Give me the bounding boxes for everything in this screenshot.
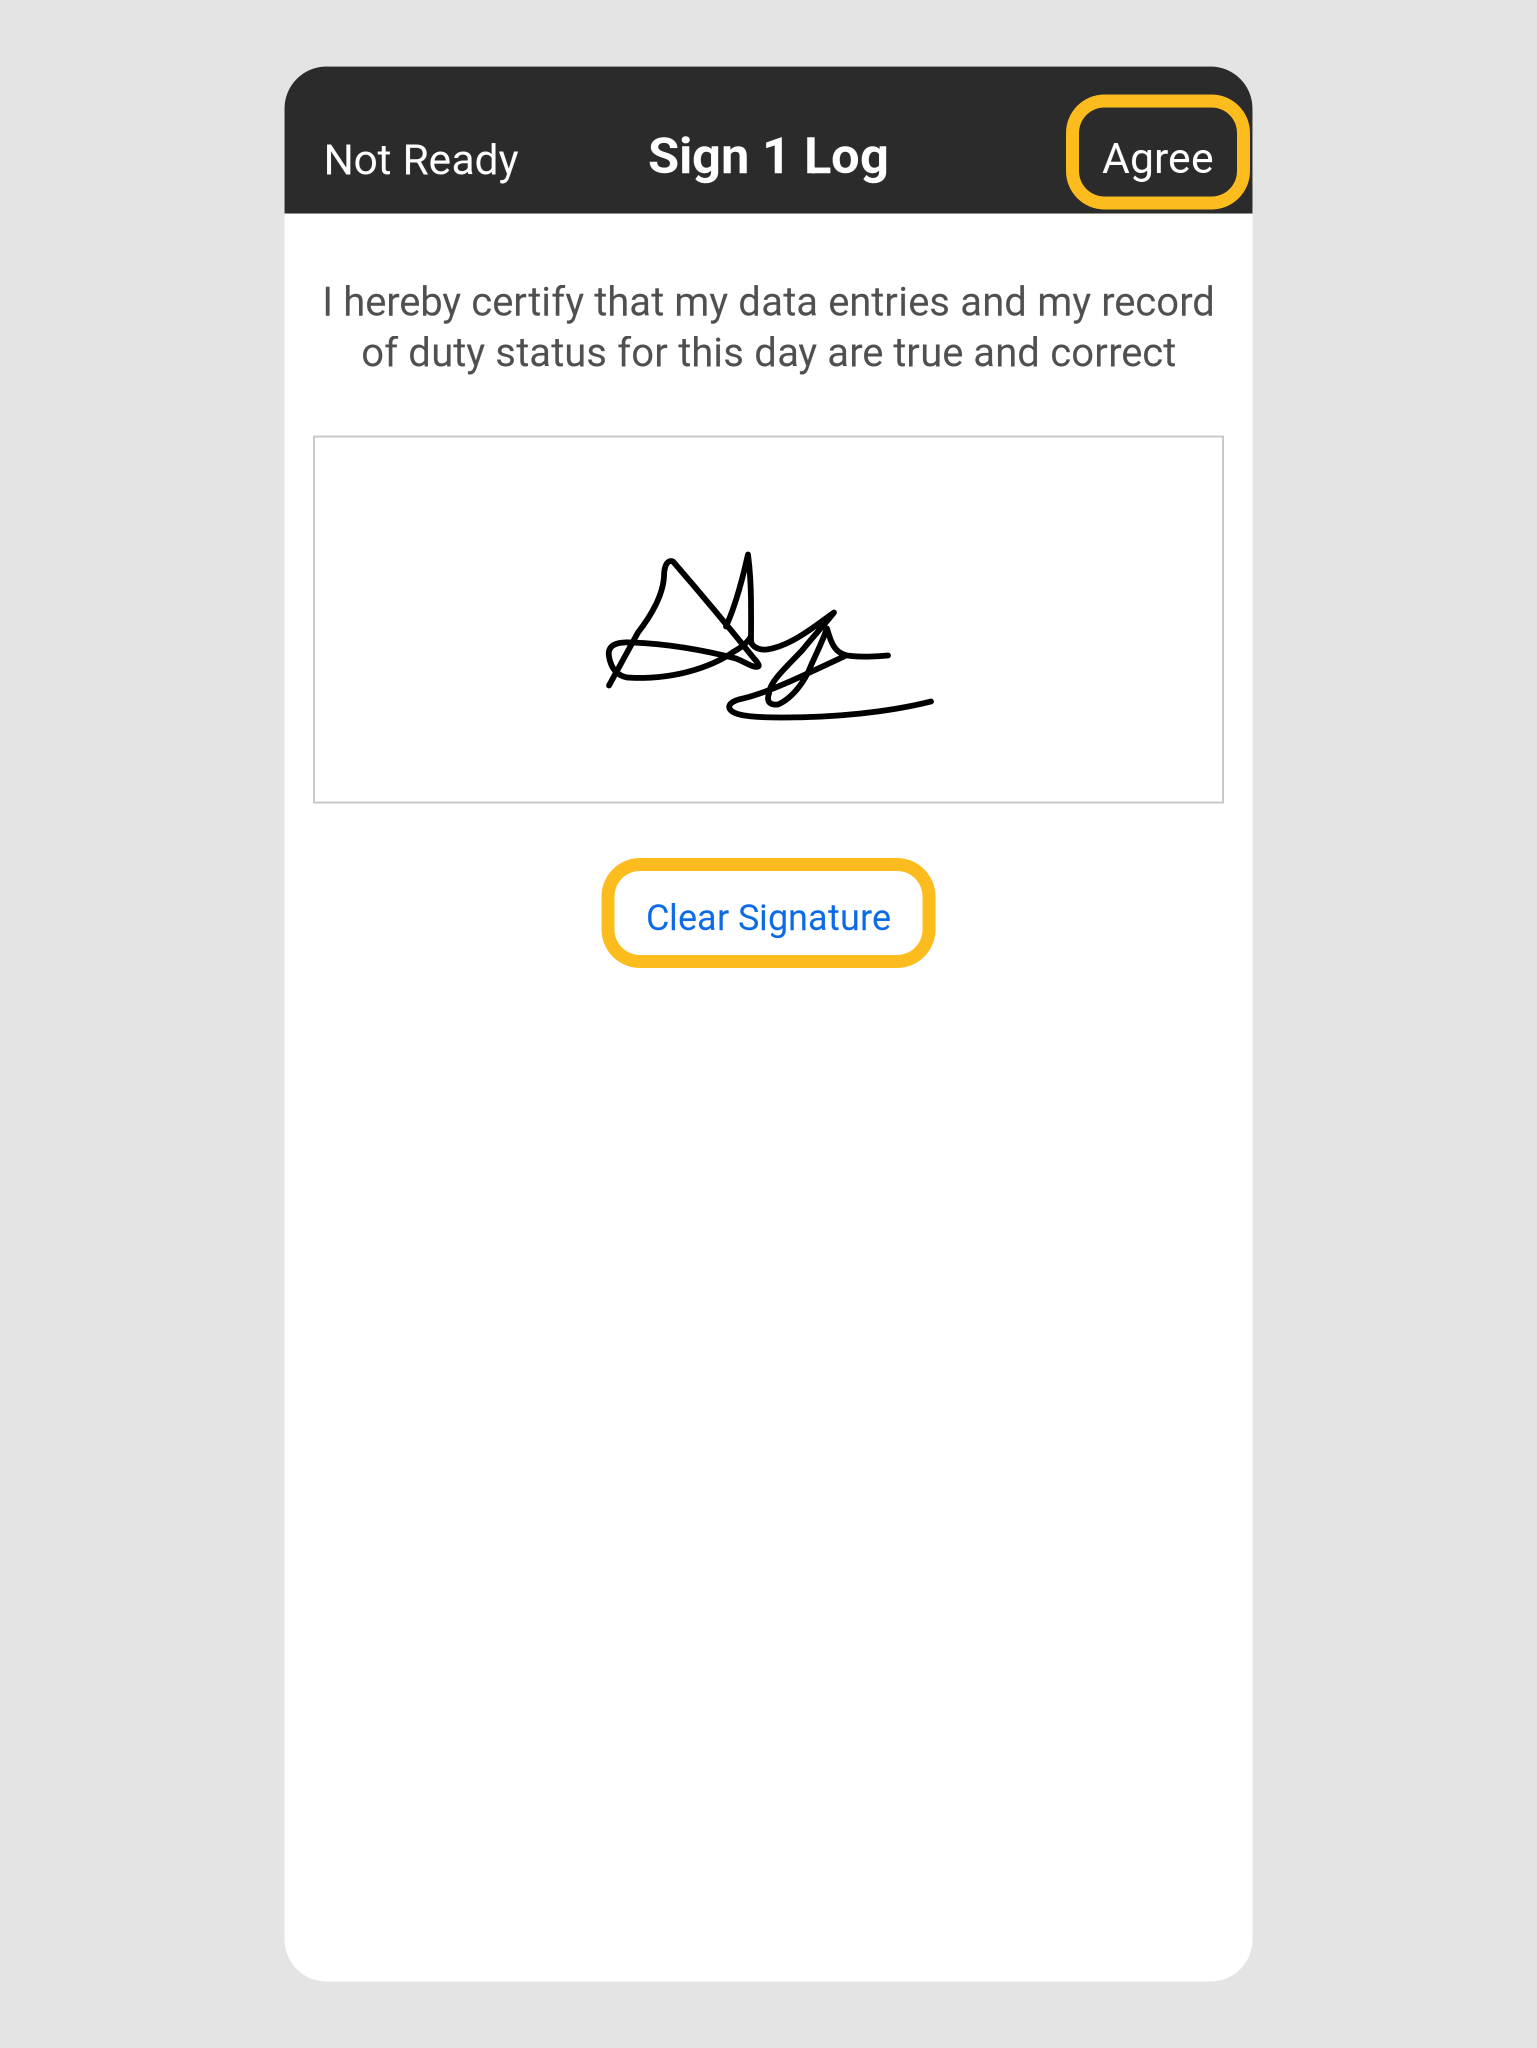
button[interactable]: Clear Signature [608, 864, 929, 966]
staticText: Clear Signature [646, 897, 891, 939]
staticText: I hereby certify that my data entries an… [322, 279, 1215, 376]
staticText: Sign 1 Log [648, 126, 889, 186]
button[interactable]: Not Ready [284, 98, 542, 213]
staticText: Not Ready [323, 135, 518, 185]
button[interactable]: Agree [1072, 94, 1252, 217]
staticText: Agree [1102, 133, 1214, 183]
